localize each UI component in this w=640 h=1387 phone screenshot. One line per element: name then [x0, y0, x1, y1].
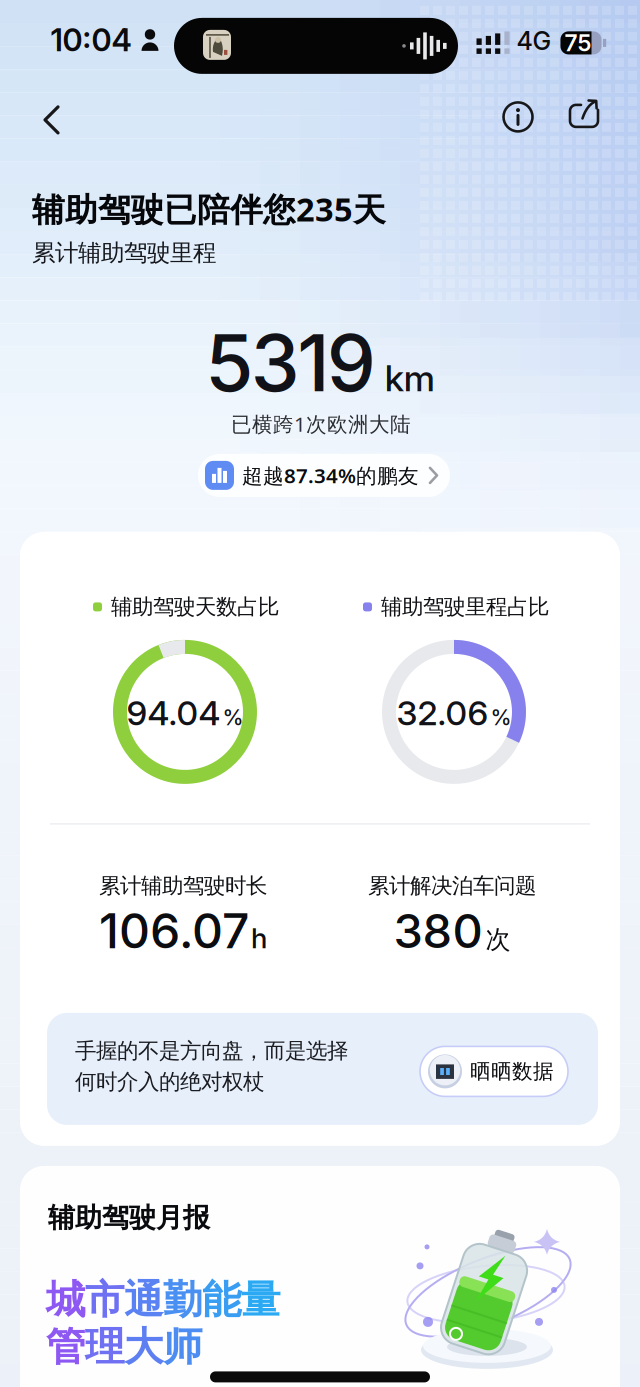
staticText: 5319	[205, 316, 376, 410]
staticText: 超越87.34%的鹏友	[242, 461, 419, 489]
staticText: 辅助驾驶月报	[48, 1201, 210, 1235]
staticText: 累计辅助驾驶时长	[99, 872, 267, 899]
staticText: 通	[124, 1275, 163, 1325]
staticText: 大	[124, 1322, 163, 1372]
staticText: 已横跨1次欧洲大陆	[231, 410, 411, 438]
staticText: %	[222, 704, 243, 730]
button[interactable]: Info	[496, 95, 540, 139]
staticText: 何时介入的绝对权杖	[75, 1068, 264, 1095]
staticText: 辅助驾驶已陪伴您235天	[32, 187, 386, 231]
staticText: 城	[46, 1275, 85, 1325]
staticText: 10:04	[50, 21, 131, 59]
staticText: 辅助驾驶天数占比	[111, 593, 279, 620]
staticText: 手握的不是方向盘，而是选择	[75, 1037, 348, 1064]
button[interactable]: Back	[30, 98, 74, 142]
staticText: 75	[564, 29, 591, 57]
staticText: 量	[241, 1275, 280, 1325]
staticText: 94.04	[126, 692, 220, 733]
button[interactable]: 超越87.34%的鹏友	[198, 454, 450, 497]
button[interactable]: 辅助驾驶月报	[20, 1166, 620, 1387]
staticText: 勤	[163, 1275, 202, 1325]
staticText: 106.07	[99, 902, 249, 960]
staticText: h	[251, 921, 267, 955]
staticText: 380	[393, 902, 482, 959]
staticText: 理	[85, 1322, 124, 1372]
staticText: 次	[485, 924, 510, 955]
staticText: 累计解决泊车问题	[368, 872, 536, 899]
staticText: 累计辅助驾驶里程	[32, 238, 216, 268]
staticText: 师	[163, 1322, 202, 1372]
staticText: %	[490, 704, 511, 730]
staticText: 4G	[516, 26, 551, 56]
button[interactable]: 晒晒数据	[420, 1046, 568, 1096]
staticText: 市	[85, 1275, 124, 1325]
staticText: 辅助驾驶里程占比	[381, 593, 549, 620]
staticText: 能	[202, 1275, 241, 1325]
button[interactable]: Share	[562, 95, 606, 139]
staticText: 管	[46, 1322, 85, 1372]
staticText: 晒晒数据	[470, 1058, 554, 1084]
staticText: 32.06	[396, 692, 488, 733]
staticText: km	[385, 356, 435, 400]
